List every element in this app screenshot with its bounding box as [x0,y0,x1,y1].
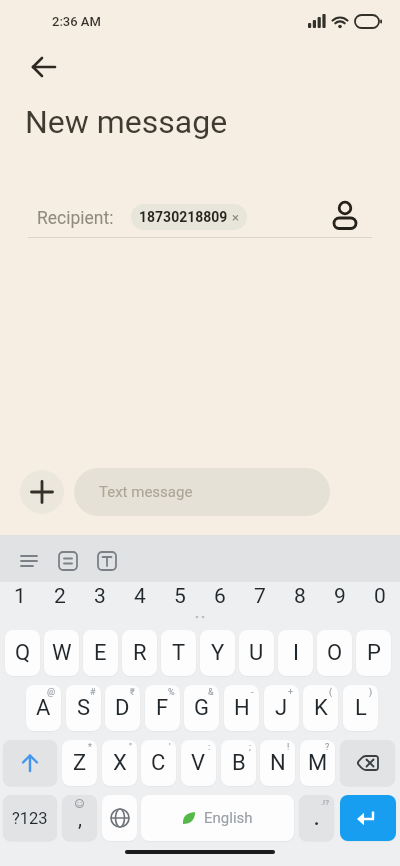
button[interactable]: ?123 [3,795,57,841]
button[interactable] [24,53,64,81]
button[interactable]: O [317,630,352,676]
button[interactable]: E [83,630,118,676]
button[interactable]: Y [200,630,235,676]
button[interactable]: D [105,685,140,731]
button[interactable]: L [343,685,378,731]
button[interactable]: 9 [320,582,360,610]
button[interactable]: W [44,630,79,676]
staticText: Z [73,750,87,776]
button[interactable] [102,795,137,841]
staticText: ; [249,742,251,753]
staticText: G [194,695,209,721]
button[interactable] [20,470,64,514]
button[interactable]: A [26,685,61,731]
staticText: B [232,750,246,776]
button[interactable] [330,194,360,234]
button[interactable]: K [303,685,338,731]
staticText: ?123 [12,809,48,828]
button[interactable]: T [161,630,196,676]
staticText: F [156,695,169,721]
button[interactable]: U [239,630,274,676]
button[interactable]: M [300,740,335,786]
staticText: 5 [174,584,186,609]
staticText: 0 [374,584,386,609]
button[interactable]: , [62,795,97,841]
button[interactable]: 6 [200,582,240,610]
staticText: S [77,695,91,721]
staticText: * [88,742,92,753]
staticText: , [78,807,82,830]
staticText: N [270,750,286,776]
button[interactable]: Text message [74,468,330,516]
button[interactable]: 5 [160,582,200,610]
staticText: V [191,750,206,776]
staticText: + [288,687,294,698]
button[interactable]: V [181,740,216,786]
staticText: # [90,687,96,698]
button[interactable]: Z [62,740,97,786]
button[interactable]: F [145,685,180,731]
button[interactable]: P [356,630,391,676]
staticText: . [314,808,320,829]
button[interactable]: 1 [0,582,40,610]
staticText: K [314,695,328,721]
button[interactable]: 8 [280,582,320,610]
button[interactable]: Q [5,630,40,676]
staticText: L [355,695,367,721]
staticText: Y [211,640,225,666]
button[interactable]: G [184,685,219,731]
staticText: M [308,750,328,776]
staticText: × [232,210,239,225]
staticText: X [113,750,127,776]
staticText: @ [47,687,56,698]
button[interactable]: S [66,685,101,731]
staticText: W [52,640,72,666]
button[interactable]: B [221,740,256,786]
button[interactable]: I [278,630,313,676]
button[interactable]: English [141,795,294,841]
button[interactable]: 4 [120,582,160,610]
button[interactable] [3,740,57,786]
staticText: 2:36 AM [52,14,101,29]
button[interactable]: 3 [80,582,120,610]
button[interactable]: R [122,630,157,676]
staticText: .!? [321,798,329,807]
button[interactable]: 0 [360,582,400,610]
button[interactable]: N [260,740,295,786]
button[interactable]: 7 [240,582,280,610]
button[interactable]: C [141,740,176,786]
staticText: ) [369,687,373,698]
staticText: 9 [334,584,346,609]
button[interactable]: X [102,740,137,786]
staticText: 2 [54,584,66,609]
button[interactable]: . [299,795,334,841]
staticText: A [36,695,51,721]
button[interactable]: 2 [40,582,80,610]
staticText: ! [287,742,290,753]
staticText: 7 [254,584,266,609]
button[interactable] [340,795,396,841]
button[interactable] [53,546,83,576]
staticText: : [208,742,211,753]
button[interactable]: H [224,685,259,731]
button[interactable]: J [264,685,299,731]
button[interactable] [14,546,44,576]
staticText: 6 [214,584,226,609]
button[interactable] [92,546,122,576]
staticText: 18730218809 [139,209,228,225]
staticText: ? [325,742,330,753]
staticText: " [129,742,132,753]
staticText: Text message [99,483,193,501]
staticText: ' [169,742,171,753]
staticText: U [249,640,264,666]
staticText: I [293,640,299,666]
staticText: New message [25,103,228,141]
staticText: D [115,695,130,721]
staticText: 4 [134,584,146,609]
staticText: Q [15,640,31,666]
button[interactable] [340,740,395,786]
staticText: 3 [94,584,106,609]
staticText: English [204,809,253,827]
staticText: P [367,640,381,666]
button[interactable]: 18730218809 [131,204,247,230]
